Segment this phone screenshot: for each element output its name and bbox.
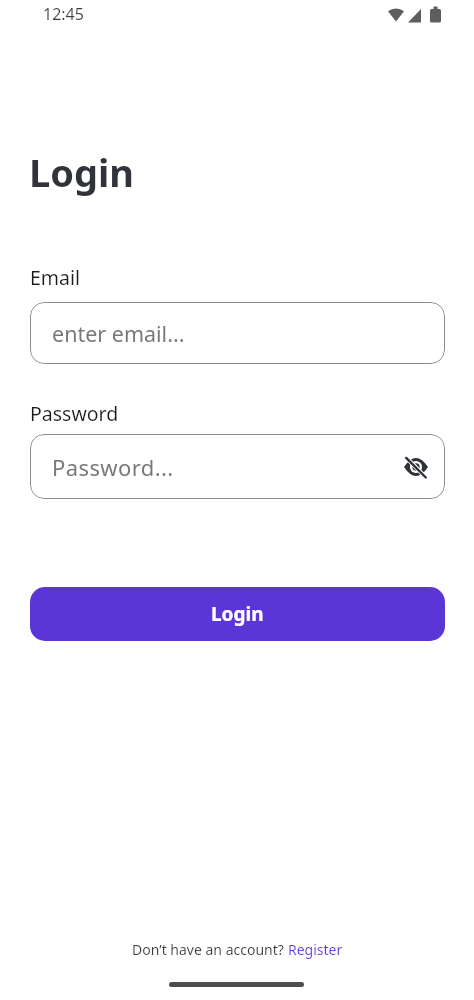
button[interactable]: enter email...: [30, 302, 445, 364]
staticText: Password: [30, 400, 119, 427]
staticText: 12:45: [43, 3, 84, 25]
staticText: Don’t have an account?: [132, 940, 288, 959]
button[interactable]: [403, 454, 429, 480]
staticText: Password...: [52, 452, 174, 482]
staticText: Login: [29, 146, 135, 198]
staticText: Email: [30, 264, 81, 291]
button[interactable]: Register: [288, 940, 343, 959]
button[interactable]: Login: [30, 587, 445, 641]
staticText: enter email...: [52, 319, 185, 348]
staticText: Login: [211, 601, 264, 627]
button[interactable]: Password...: [30, 434, 445, 499]
